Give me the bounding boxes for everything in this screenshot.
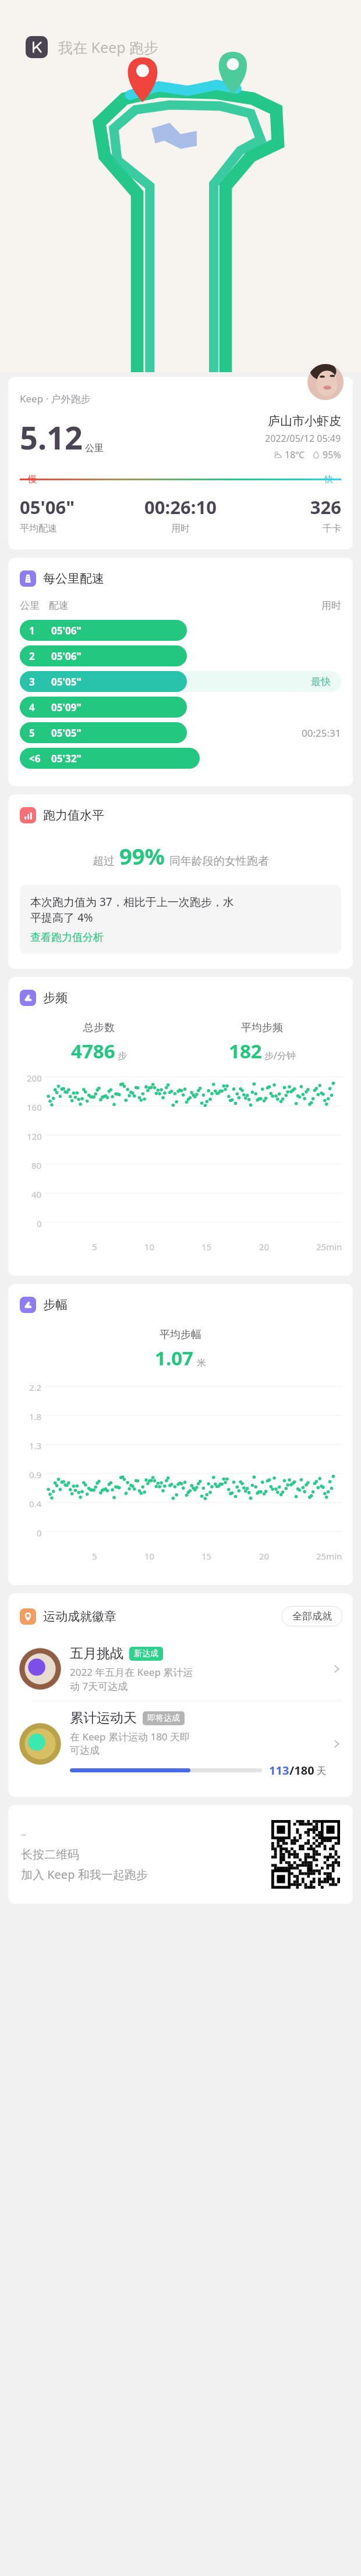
staticText: 平均步频: [241, 1021, 283, 1034]
staticText: 同年龄段的女性跑者: [169, 854, 269, 868]
staticText: 加入 Keep 和我一起跑步: [21, 1867, 148, 1882]
staticText: 0.9: [29, 1469, 42, 1480]
staticText: 即将达成: [147, 1713, 180, 1724]
staticText: 步/分钟: [264, 1049, 296, 1062]
staticText: 步: [118, 1050, 127, 1062]
staticText: 长按二维码: [21, 1847, 79, 1862]
staticText: 全部成就: [292, 1610, 332, 1622]
button[interactable]: 2: [20, 643, 341, 669]
staticText: 200: [27, 1072, 42, 1084]
staticText: 05'06": [51, 650, 82, 663]
staticText: 15: [201, 1241, 212, 1253]
staticText: 80: [31, 1159, 42, 1171]
staticText: 05'06": [51, 624, 82, 637]
staticText: 0: [37, 1527, 42, 1539]
staticText: 5.12: [20, 416, 83, 459]
button[interactable]: 累计运动天: [8, 1701, 353, 1786]
button[interactable]: <6: [20, 745, 341, 771]
staticText: 2: [29, 650, 35, 663]
staticText: 步幅: [43, 1297, 68, 1312]
staticText: 用时: [171, 523, 190, 534]
staticText: 平均步幅: [160, 1328, 201, 1341]
staticText: <6: [29, 752, 41, 765]
staticText: 在 Keep 累计运动 180 天即 可达成: [70, 1730, 190, 1757]
staticText: 1: [29, 624, 35, 637]
staticText: 平均配速: [20, 523, 57, 534]
button[interactable]: –: [8, 1805, 353, 1904]
staticText: 326: [310, 495, 341, 519]
staticText: Keep · 户外跑步: [20, 392, 91, 405]
staticText: 2.2: [29, 1382, 42, 1393]
staticText: 1.3: [29, 1440, 42, 1451]
staticText: 我在 Keep 跑步: [58, 37, 159, 57]
staticText: 1.07: [155, 1345, 193, 1371]
staticText: 超过: [93, 854, 115, 868]
staticText: 总步数: [83, 1021, 115, 1034]
staticText: 25min: [316, 1241, 342, 1253]
staticText: 步频: [43, 990, 68, 1005]
button[interactable]: 全部成就: [282, 1606, 342, 1626]
staticText: 182: [229, 1038, 262, 1064]
staticText: 5: [29, 726, 35, 740]
staticText: 用时: [321, 600, 341, 612]
staticText: 10: [144, 1550, 155, 1562]
staticText: 40: [31, 1189, 42, 1200]
staticText: 慢: [28, 474, 37, 485]
staticText: 跑力值水平: [43, 808, 104, 823]
staticText: 4786: [71, 1038, 115, 1064]
staticText: 99%: [119, 841, 165, 871]
button[interactable]: 5: [20, 720, 341, 745]
staticText: –: [21, 1827, 26, 1842]
staticText: 05'05": [51, 675, 82, 688]
staticText: 运动成就徽章: [43, 1609, 116, 1624]
staticText: 4: [29, 701, 35, 714]
button[interactable]: 3: [20, 669, 341, 694]
button[interactable]: 本次跑力值为 37，相比于上一次跑步，水 平提高了 4%: [20, 885, 341, 954]
staticText: 庐山市小虾皮: [268, 413, 341, 429]
staticText: 查看跑力值分析: [30, 931, 104, 944]
staticText: 米: [197, 1357, 206, 1369]
staticText: 95%: [323, 448, 341, 461]
staticText: 最快: [311, 676, 331, 688]
staticText: 05'05": [51, 726, 82, 740]
staticText: 20: [259, 1550, 270, 1562]
staticText: 1.8: [29, 1411, 42, 1422]
staticText: 千卡: [323, 523, 341, 534]
staticText: 160: [27, 1101, 42, 1113]
staticText: 累计运动天: [70, 1710, 137, 1726]
staticText: 120: [27, 1130, 42, 1142]
staticText: 05'06": [20, 495, 75, 519]
staticText: 配速: [49, 600, 69, 612]
staticText: /180: [289, 1762, 314, 1778]
staticText: 10: [144, 1241, 155, 1253]
staticText: 00:26:10: [144, 495, 217, 519]
button[interactable]: 1: [20, 618, 341, 643]
other: 查看详情: [331, 1738, 342, 1750]
button[interactable]: 4: [20, 694, 341, 720]
staticText: 每公里配速: [43, 571, 104, 586]
button[interactable]: 五月挑战: [8, 1637, 353, 1701]
staticText: 3: [29, 675, 35, 688]
staticText: 05'32": [51, 752, 82, 765]
staticText: 公里: [20, 600, 40, 612]
staticText: 2022/05/12 05:49: [265, 432, 341, 445]
staticText: 公里: [85, 443, 104, 454]
staticText: 15: [201, 1550, 212, 1562]
staticText: 新达成: [134, 1649, 158, 1659]
staticText: 五月挑战: [70, 1645, 123, 1662]
staticText: 天: [317, 1765, 326, 1777]
staticText: 本次跑力值为 37，相比于上一次跑步，水 平提高了 4%: [30, 894, 234, 925]
staticText: 05'09": [51, 701, 82, 714]
staticText: 00:25:31: [302, 726, 341, 740]
staticText: 25min: [316, 1550, 342, 1562]
staticText: 20: [259, 1241, 270, 1253]
staticText: 0: [37, 1218, 42, 1229]
other: 查看详情: [331, 1663, 342, 1675]
staticText: 0.4: [29, 1498, 42, 1510]
staticText: 快: [324, 474, 333, 485]
staticText: 5: [92, 1550, 97, 1562]
staticText: 18℃: [285, 448, 305, 461]
staticText: 2022 年五月在 Keep 累计运 动 7天可达成: [70, 1665, 193, 1693]
staticText: 113: [269, 1762, 289, 1778]
staticText: 5: [92, 1241, 97, 1253]
